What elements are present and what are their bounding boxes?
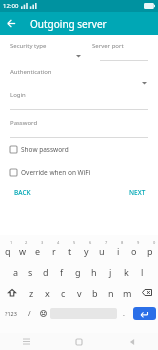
button[interactable]: n bbox=[103, 282, 119, 303]
staticText: n bbox=[108, 287, 114, 299]
button[interactable]: / bbox=[22, 303, 36, 324]
staticText: p bbox=[147, 245, 153, 257]
staticText: g bbox=[75, 266, 81, 278]
button[interactable]: w bbox=[15, 240, 30, 261]
button[interactable]: j bbox=[102, 261, 118, 282]
staticText: 9 bbox=[137, 240, 140, 245]
staticText: m bbox=[123, 287, 132, 299]
staticText: 4 bbox=[57, 240, 60, 245]
staticText: k bbox=[124, 266, 129, 278]
staticText: f bbox=[60, 266, 64, 278]
staticText: b bbox=[92, 287, 98, 299]
staticText: 8 bbox=[121, 240, 124, 245]
button[interactable]: Back bbox=[105, 333, 158, 350]
staticText: l bbox=[141, 266, 144, 278]
button[interactable]: m bbox=[119, 282, 135, 303]
button[interactable]: f bbox=[54, 261, 70, 282]
button[interactable]: s bbox=[23, 261, 38, 282]
button[interactable]: x bbox=[39, 282, 55, 303]
button[interactable]: k bbox=[118, 261, 134, 282]
staticText: 5 bbox=[73, 240, 76, 245]
button[interactable]: Recents bbox=[0, 333, 52, 350]
button[interactable]: g bbox=[70, 261, 86, 282]
staticText: i bbox=[117, 245, 120, 257]
staticText: 7 bbox=[105, 240, 108, 245]
staticText: y bbox=[84, 245, 89, 257]
staticText: q bbox=[5, 245, 11, 257]
button[interactable]: b bbox=[87, 282, 103, 303]
button[interactable]: . bbox=[117, 303, 131, 324]
staticText: . bbox=[123, 309, 125, 319]
button[interactable]: Enter bbox=[133, 307, 156, 320]
button[interactable]: u bbox=[94, 240, 110, 261]
button[interactable]: BACK bbox=[10, 186, 35, 199]
button[interactable]: l bbox=[134, 261, 150, 282]
staticText: w bbox=[19, 245, 27, 257]
button[interactable]: z bbox=[23, 282, 39, 303]
button[interactable]: Override when on WiFi bbox=[10, 168, 148, 177]
staticText: 6 bbox=[89, 240, 92, 245]
button[interactable]: c bbox=[55, 282, 71, 303]
button[interactable]: Home bbox=[52, 333, 105, 350]
staticText: Outgoing server bbox=[30, 17, 107, 31]
button[interactable]: v bbox=[71, 282, 87, 303]
staticText: Authentication bbox=[10, 68, 52, 76]
button[interactable]: Backspace bbox=[135, 282, 158, 303]
staticText: o bbox=[131, 245, 137, 257]
staticText: Login bbox=[10, 91, 26, 99]
button[interactable]: i bbox=[110, 240, 126, 261]
staticText: 3 bbox=[41, 240, 44, 245]
staticText: x bbox=[45, 287, 50, 299]
button[interactable]: d bbox=[38, 261, 54, 282]
button[interactable]: Show password bbox=[10, 145, 148, 154]
staticText: a bbox=[13, 266, 19, 278]
staticText: z bbox=[29, 287, 34, 299]
staticText: Show password bbox=[21, 145, 69, 154]
staticText: u bbox=[99, 245, 105, 257]
staticText: d bbox=[43, 266, 49, 278]
staticText: e bbox=[35, 245, 41, 257]
button[interactable]: a bbox=[8, 261, 23, 282]
button[interactable]: Emoji bbox=[36, 303, 50, 324]
button[interactable]: e bbox=[30, 240, 46, 261]
staticText: 2 bbox=[25, 240, 28, 245]
staticText: 1 bbox=[10, 240, 13, 245]
staticText: c bbox=[61, 287, 66, 299]
staticText: NEXT bbox=[129, 188, 146, 197]
staticText: ?123 bbox=[5, 310, 17, 317]
button[interactable]: Back bbox=[0, 12, 23, 35]
staticText: t bbox=[68, 245, 72, 257]
staticText: r bbox=[52, 245, 56, 257]
staticText: v bbox=[77, 287, 82, 299]
button[interactable]: r bbox=[46, 240, 62, 261]
staticText: 0 bbox=[153, 240, 156, 245]
staticText: Security type bbox=[10, 42, 47, 50]
staticText: 12:00 bbox=[3, 2, 19, 10]
button[interactable]: t bbox=[62, 240, 78, 261]
button[interactable]: o bbox=[126, 240, 142, 261]
staticText: Server port bbox=[92, 42, 124, 50]
staticText: Override when on WiFi bbox=[21, 168, 91, 177]
staticText: h bbox=[91, 266, 97, 278]
button[interactable]: q bbox=[0, 240, 15, 261]
button[interactable]: p bbox=[142, 240, 158, 261]
staticText: s bbox=[28, 266, 33, 278]
staticText: j bbox=[109, 266, 112, 278]
button[interactable]: ?123 bbox=[0, 303, 22, 324]
staticText: Password bbox=[10, 119, 38, 127]
button[interactable]: h bbox=[86, 261, 102, 282]
button[interactable]: Shift bbox=[0, 282, 23, 303]
button[interactable]: NEXT bbox=[125, 186, 150, 199]
staticText: BACK bbox=[14, 188, 31, 197]
button[interactable]: y bbox=[78, 240, 94, 261]
staticText: / bbox=[28, 309, 31, 319]
